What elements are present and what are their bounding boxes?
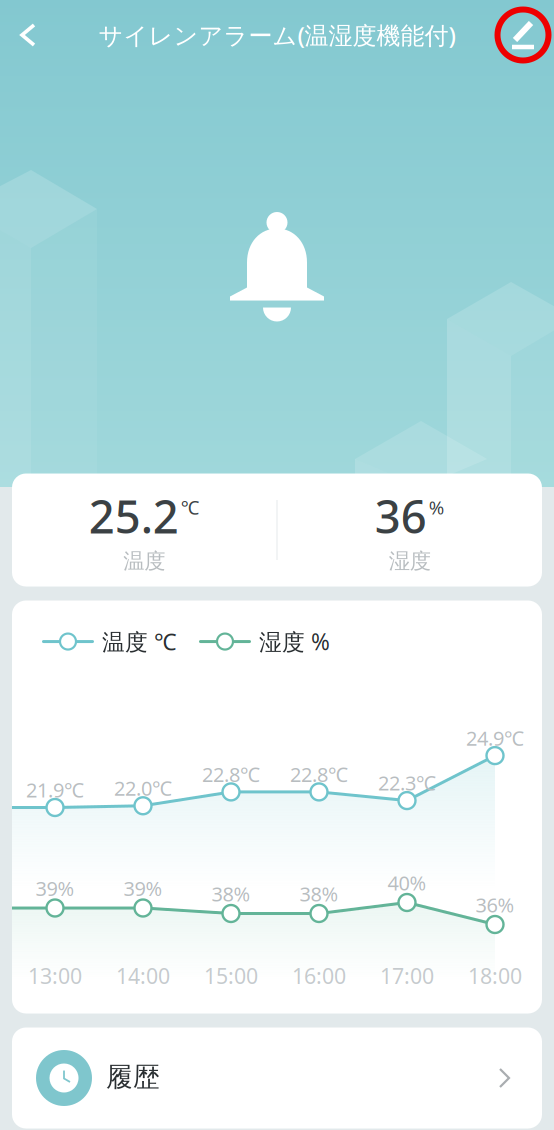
staticText: 温度 [123, 548, 165, 574]
staticText: 36% [475, 891, 514, 918]
staticText: 36 [375, 486, 427, 546]
staticText: 22.8℃ [290, 761, 348, 787]
staticText: 温度 ℃ [102, 626, 177, 657]
staticText: 38% [211, 880, 250, 907]
staticText: ℃ [181, 495, 200, 520]
staticText: 22.3℃ [378, 770, 436, 796]
staticText: 15:00 [204, 961, 258, 990]
staticText: 22.8℃ [202, 761, 260, 787]
staticText: 21.9℃ [26, 776, 84, 803]
staticText: 18:00 [468, 961, 522, 990]
staticText: 39% [35, 875, 74, 902]
staticText: サイレンアラーム(温湿度機能付) [98, 19, 455, 51]
staticText: 39% [123, 875, 162, 902]
staticText: 17:00 [380, 961, 434, 990]
staticText: 14:00 [116, 961, 170, 990]
button[interactable]: Edit [492, 0, 554, 70]
staticText: 40% [387, 869, 426, 896]
staticText: 25.2 [89, 486, 179, 546]
staticText: 22.0℃ [114, 775, 172, 801]
staticText: 履歴 [106, 1061, 160, 1093]
staticText: 38% [299, 880, 338, 907]
staticText: 湿度 % [259, 626, 330, 657]
staticText: % [429, 495, 445, 520]
staticText: 16:00 [292, 961, 346, 990]
staticText: 湿度 [389, 548, 431, 574]
staticText: 24.9℃ [466, 725, 524, 751]
button[interactable]: 履歴 [12, 1027, 542, 1128]
staticText: 13:00 [28, 961, 82, 990]
button[interactable]: Back [0, 0, 56, 70]
